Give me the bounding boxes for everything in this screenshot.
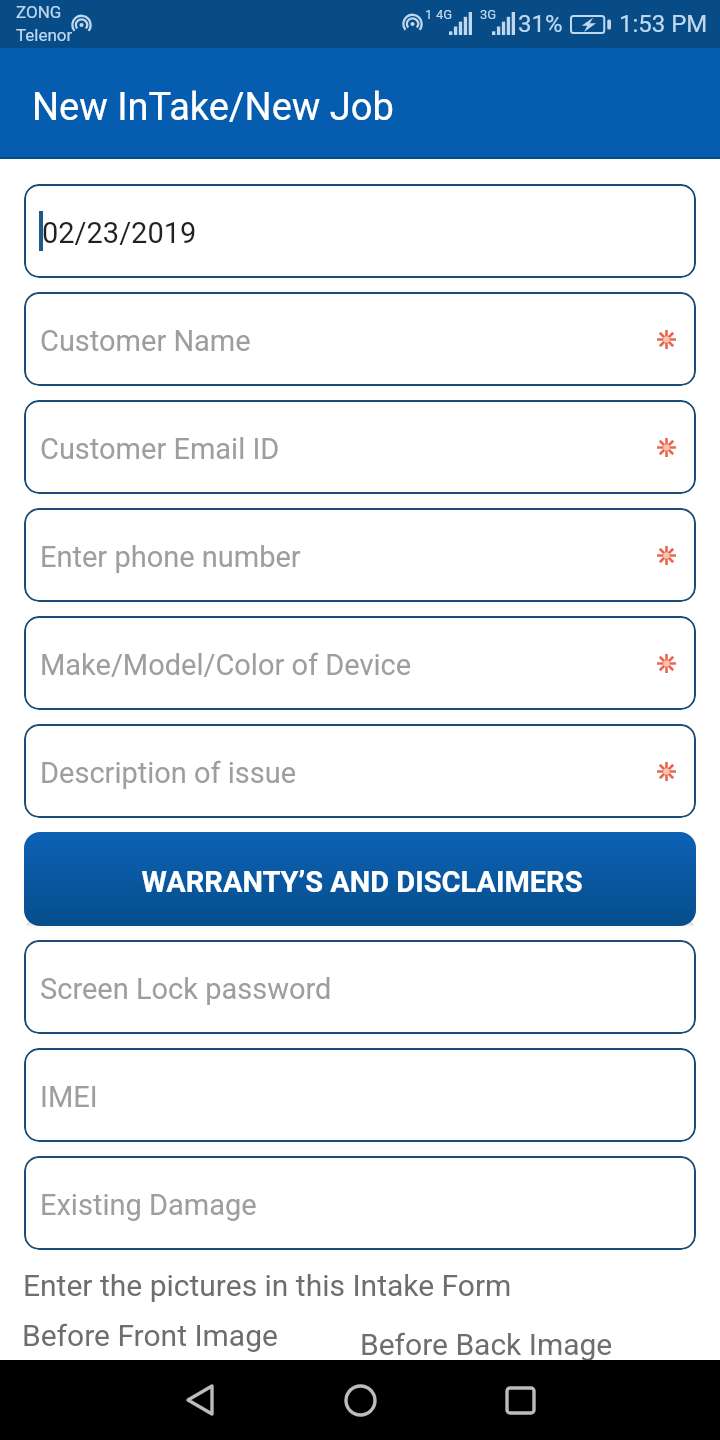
- staticText: IMEI: [40, 1080, 98, 1114]
- button[interactable]: 02/23/2019: [24, 184, 696, 278]
- staticText: 1: [425, 7, 433, 22]
- staticText: Enter phone number: [40, 540, 301, 574]
- button[interactable]: Make/Model/Color of Device: [24, 616, 696, 710]
- staticText: 02/23/2019: [42, 216, 197, 250]
- staticText: Make/Model/Color of Device: [40, 648, 412, 682]
- button[interactable]: Back: [120, 1360, 280, 1440]
- button[interactable]: Existing Damage: [24, 1156, 696, 1250]
- button[interactable]: WARRANTY’S AND DISCLAIMERS: [24, 832, 696, 926]
- button[interactable]: Home: [280, 1360, 440, 1440]
- staticText: WARRANTY’S AND DISCLAIMERS: [141, 865, 583, 899]
- button[interactable]: Customer Email ID: [24, 400, 696, 494]
- staticText: Screen Lock password: [40, 972, 332, 1006]
- staticText: Description of issue: [40, 756, 297, 790]
- staticText: Telenor: [16, 25, 73, 45]
- button[interactable]: Recent apps: [440, 1360, 600, 1440]
- button[interactable]: IMEI: [24, 1048, 696, 1142]
- staticText: 1:53 PM: [619, 10, 708, 38]
- staticText: Enter the pictures in this Intake Form: [23, 1268, 512, 1303]
- button[interactable]: Description of issue: [24, 724, 696, 818]
- staticText: ZONG: [16, 2, 62, 22]
- button[interactable]: Enter phone number: [24, 508, 696, 602]
- staticText: Customer Name: [40, 324, 251, 358]
- staticText: 31%: [518, 10, 563, 38]
- button[interactable]: Customer Name: [24, 292, 696, 386]
- staticText: Existing Damage: [40, 1188, 257, 1222]
- staticText: 4G: [436, 7, 453, 22]
- staticText: New InTake/New Job: [32, 85, 394, 130]
- staticText: Before Back Image: [360, 1327, 613, 1362]
- staticText: Customer Email ID: [40, 432, 280, 466]
- staticText: Before Front Image: [22, 1318, 278, 1353]
- button[interactable]: Screen Lock password: [24, 940, 696, 1034]
- staticText: 3G: [480, 7, 497, 22]
